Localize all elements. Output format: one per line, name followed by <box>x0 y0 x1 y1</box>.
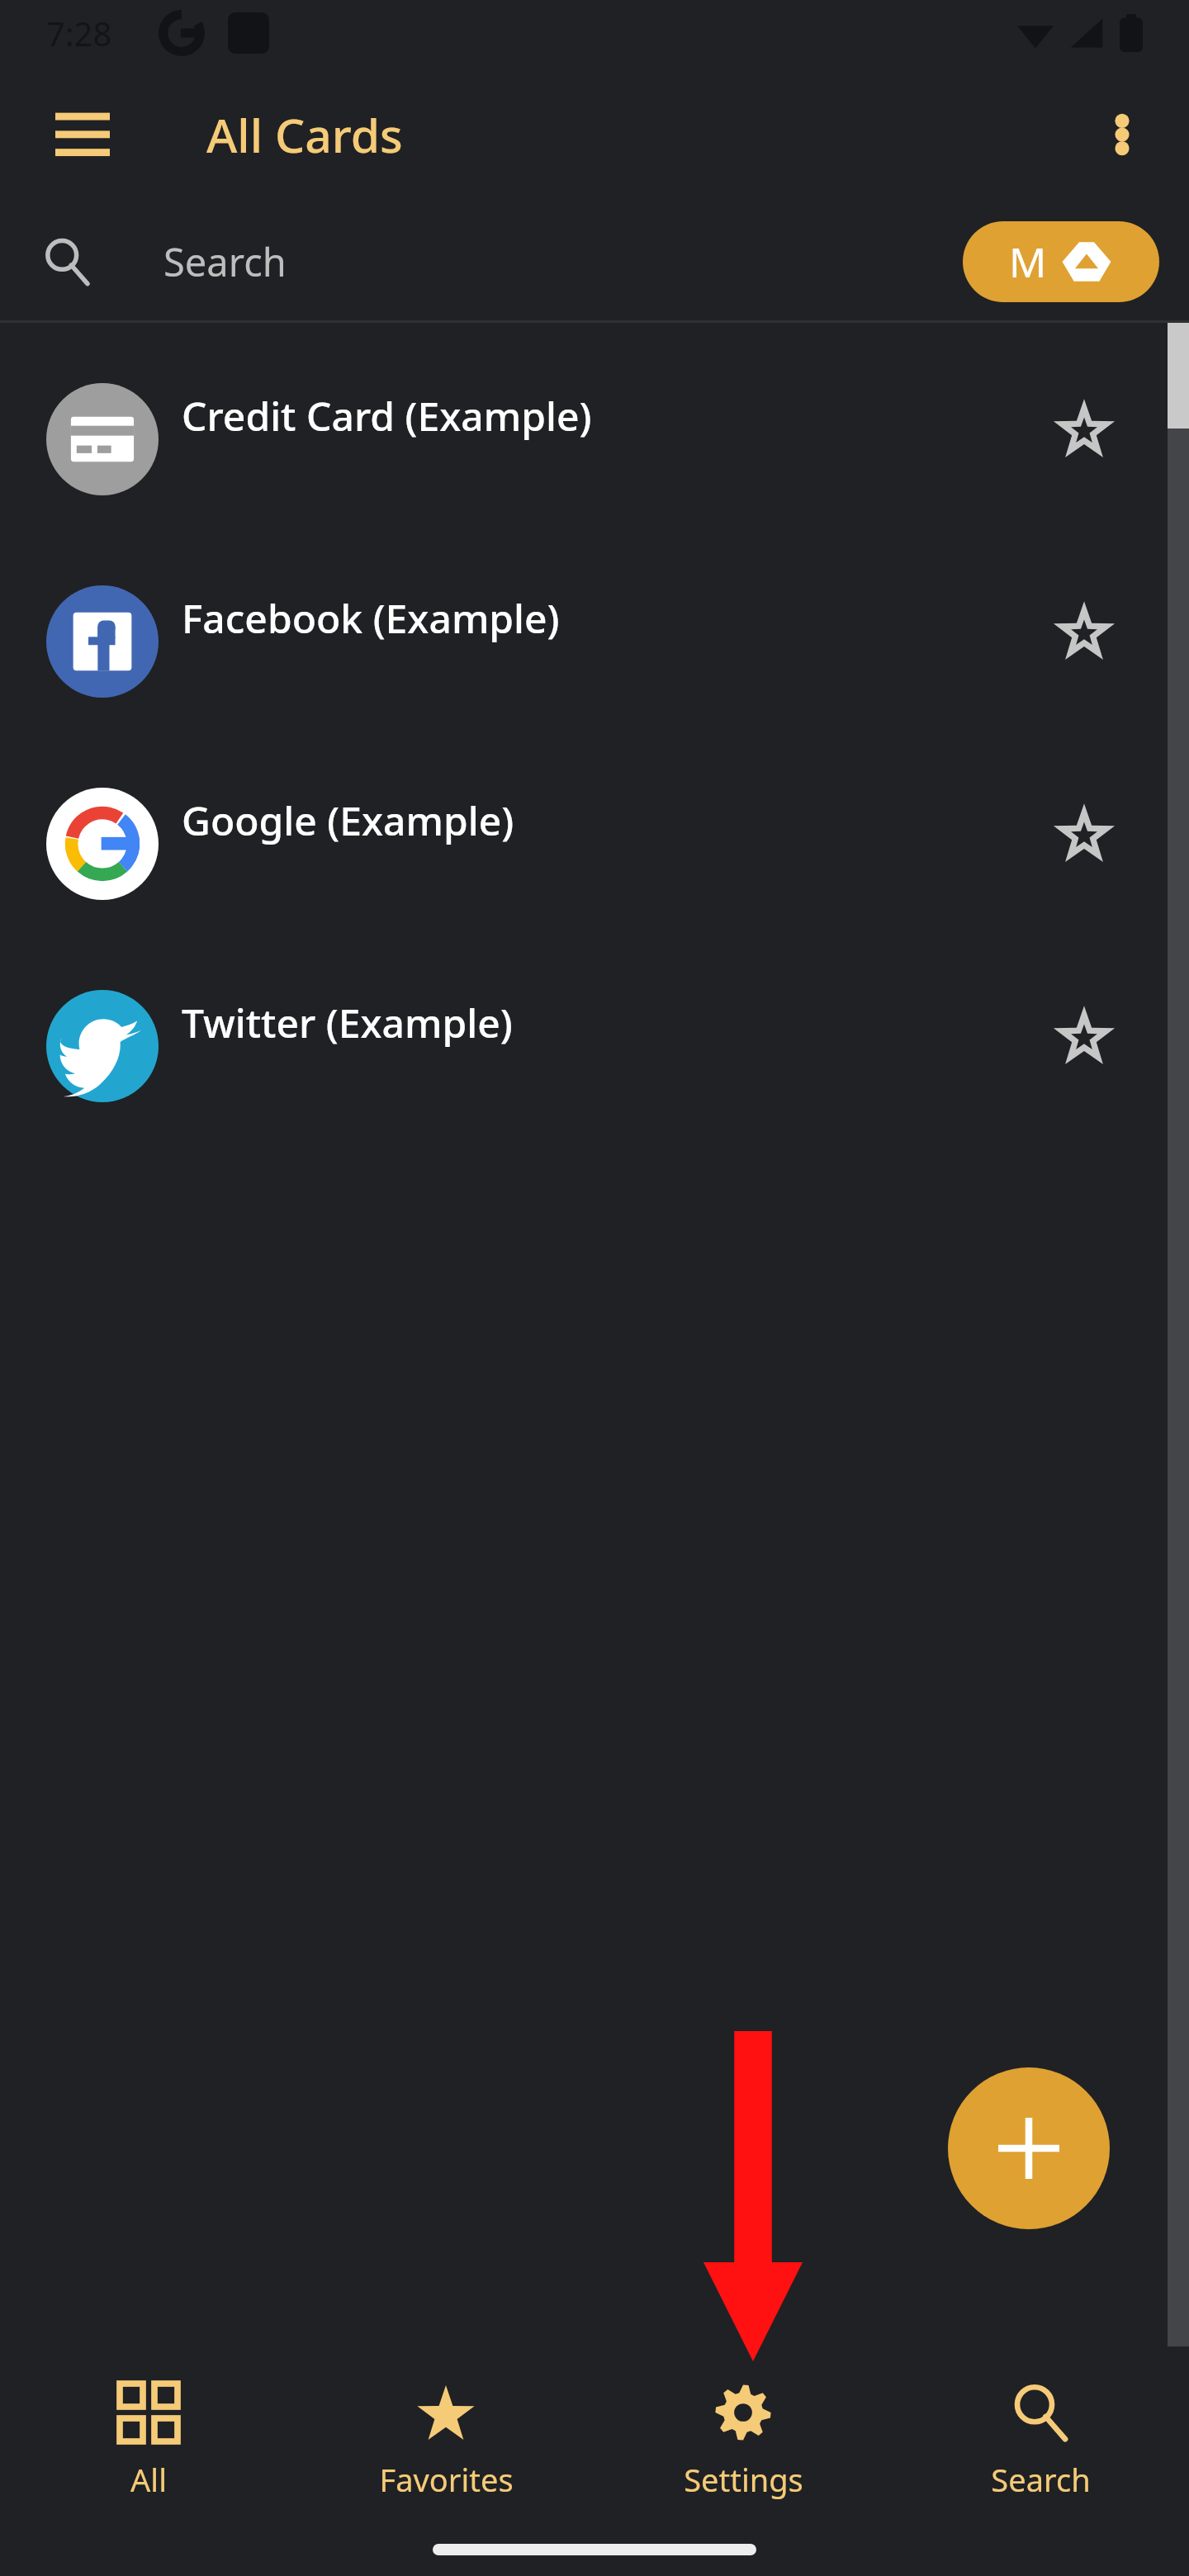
button[interactable]: Account <box>963 221 1159 302</box>
button[interactable]: Add card <box>948 2067 1110 2229</box>
button[interactable]: Search <box>892 2361 1189 2523</box>
button[interactable]: Open navigation menu <box>33 85 132 184</box>
staticText: Credit Card (Example) <box>182 389 592 443</box>
button[interactable]: Google (Example) <box>0 742 1189 945</box>
staticText: Facebook (Example) <box>182 591 560 645</box>
staticText: Settings <box>684 2458 803 2501</box>
button[interactable]: Search <box>18 213 116 310</box>
staticText: Favorites <box>379 2458 514 2501</box>
button[interactable]: Facebook (Example) <box>0 540 1189 742</box>
staticText: Twitter (Example) <box>182 996 513 1049</box>
staticText: All Cards <box>206 102 403 167</box>
button[interactable]: Favorite Google (Example) <box>1022 772 1146 896</box>
button[interactable]: Settings <box>594 2361 892 2523</box>
button[interactable]: Favorite Facebook (Example) <box>1022 570 1146 694</box>
button[interactable]: Favorite Credit Card (Example) <box>1022 367 1146 491</box>
button[interactable]: More options <box>1073 86 1171 183</box>
staticText: M <box>1009 234 1047 290</box>
button[interactable]: Favorites <box>297 2361 594 2523</box>
staticText: Search <box>991 2458 1091 2501</box>
button[interactable]: Favorite Twitter (Example) <box>1022 974 1146 1098</box>
button[interactable]: All <box>0 2361 297 2523</box>
button[interactable]: Twitter (Example) <box>0 945 1189 1147</box>
staticText: Search <box>163 235 287 288</box>
staticText: Google (Example) <box>182 793 514 847</box>
staticText: All <box>130 2458 167 2501</box>
staticText: 7:28 <box>46 11 112 55</box>
button[interactable]: Credit Card (Example) <box>0 338 1189 540</box>
